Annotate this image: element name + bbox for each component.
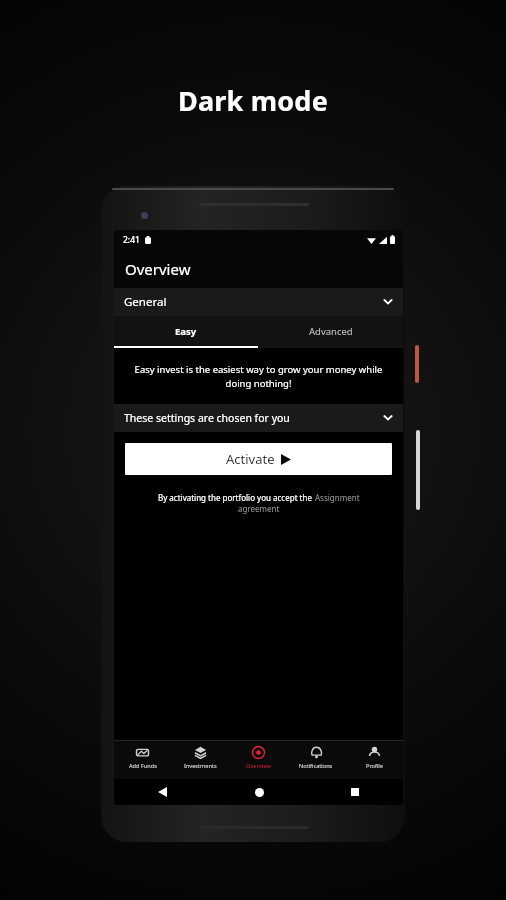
staticText: Easy xyxy=(175,325,197,338)
staticText: Overview xyxy=(125,259,191,279)
staticText: 2:41 xyxy=(123,234,140,246)
button[interactable]: Overview xyxy=(229,741,287,779)
staticText: These settings are chosen for you xyxy=(124,411,290,425)
button[interactable]: Activate xyxy=(125,443,392,475)
staticText: Easy invest is the easiest way to grow y… xyxy=(130,363,387,390)
staticText: Profile xyxy=(366,762,383,770)
button[interactable]: agreement xyxy=(238,503,280,514)
other: Power xyxy=(415,345,419,383)
staticText: Dark mode xyxy=(178,82,328,119)
button[interactable]: Profile xyxy=(345,741,403,779)
button[interactable]: Add Funds xyxy=(114,741,171,779)
button[interactable]: Back xyxy=(114,779,211,805)
button[interactable]: Notifications xyxy=(287,741,345,779)
other: Volume xyxy=(416,430,420,510)
button[interactable]: Investments xyxy=(171,741,229,779)
staticText: Add Funds xyxy=(129,762,157,770)
staticText: Notifications xyxy=(299,762,333,770)
staticText: Advanced xyxy=(309,325,353,338)
button[interactable]: Easy xyxy=(114,316,258,346)
button[interactable]: Home xyxy=(211,779,307,805)
button[interactable]: Overview xyxy=(114,249,403,288)
button[interactable]: These settings are chosen for you xyxy=(114,404,403,432)
staticText: By activating the portfolio you accept t… xyxy=(158,492,315,503)
staticText: Activate xyxy=(226,450,275,468)
staticText: Overview xyxy=(246,762,271,770)
staticText: General xyxy=(124,294,167,310)
button[interactable]: Advanced xyxy=(258,316,403,346)
button[interactable]: Assignment xyxy=(315,492,360,503)
button[interactable]: General xyxy=(114,288,403,316)
staticText: Investments xyxy=(184,762,217,770)
button[interactable]: Recents xyxy=(307,779,403,805)
